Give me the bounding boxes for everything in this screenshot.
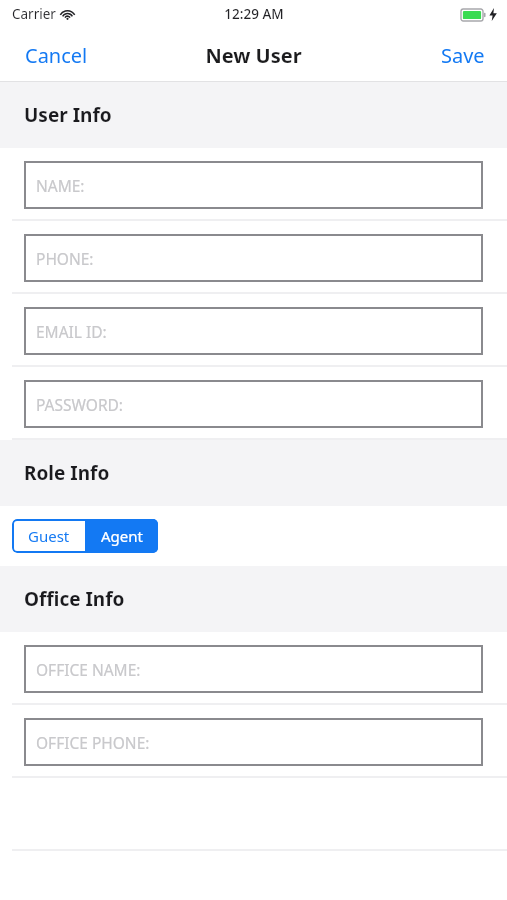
button[interactable]: PASSWORD:	[24, 380, 483, 428]
staticText: Role Info	[24, 460, 110, 486]
button[interactable]: PHONE:	[24, 234, 483, 282]
staticText: Office Info	[24, 586, 125, 612]
staticText: PASSWORD:	[36, 394, 124, 415]
button[interactable]: Save	[419, 30, 507, 81]
button[interactable]: Guest	[12, 519, 85, 553]
button[interactable]: NAME:	[24, 161, 483, 209]
staticText: NAME:	[36, 175, 85, 196]
staticText: New User	[205, 42, 302, 69]
staticText: EMAIL ID:	[36, 321, 107, 342]
button[interactable]: Cancel	[0, 30, 113, 81]
staticText: Save	[441, 42, 485, 69]
staticText: PHONE:	[36, 248, 94, 269]
button[interactable]: Agent	[85, 519, 158, 553]
staticText: Agent	[101, 526, 143, 546]
button[interactable]: OFFICE PHONE:	[24, 718, 483, 766]
staticText: Cancel	[25, 42, 88, 69]
staticText: OFFICE NAME:	[36, 659, 141, 680]
button[interactable]: EMAIL ID:	[24, 307, 483, 355]
button[interactable]: OFFICE NAME:	[24, 645, 483, 693]
staticText: 12:29 AM	[224, 5, 284, 23]
staticText: Carrier	[12, 5, 56, 23]
staticText: User Info	[24, 102, 112, 128]
staticText: Guest	[28, 526, 70, 546]
staticText: OFFICE PHONE:	[36, 732, 150, 753]
